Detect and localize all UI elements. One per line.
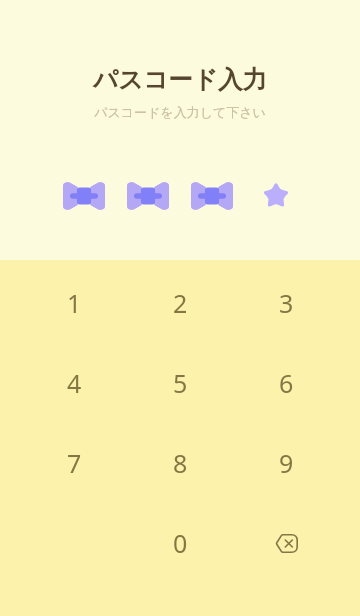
other: Delete [275, 534, 298, 553]
staticText: 5 [173, 366, 188, 400]
staticText: 9 [279, 446, 294, 480]
button[interactable]: 4 [21, 343, 127, 423]
button[interactable]: 2 [127, 263, 233, 343]
button[interactable]: 6 [233, 343, 339, 423]
button[interactable]: 1 [21, 263, 127, 343]
staticText: 0 [173, 526, 188, 560]
button[interactable]: 0 [127, 503, 233, 583]
button[interactable]: 7 [21, 423, 127, 503]
staticText: 2 [173, 286, 188, 320]
button[interactable]: 8 [127, 423, 233, 503]
staticText: 4 [67, 366, 82, 400]
button[interactable]: Delete [233, 503, 339, 583]
button[interactable]: 5 [127, 343, 233, 423]
staticText: パスコード入力 [93, 64, 267, 95]
staticText: 3 [279, 286, 294, 320]
staticText: 1 [67, 286, 82, 320]
button[interactable]: 3 [233, 263, 339, 343]
staticText: 7 [67, 446, 82, 480]
staticText: 6 [279, 366, 294, 400]
staticText: パスコードを入力して下さい [94, 104, 266, 120]
staticText: 8 [173, 446, 188, 480]
button[interactable]: 9 [233, 423, 339, 503]
